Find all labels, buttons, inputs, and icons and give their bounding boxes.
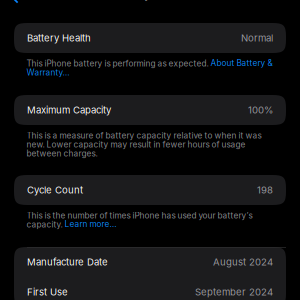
staticText: About Battery &	[210, 58, 272, 68]
button[interactable]: About Battery &	[210, 58, 272, 67]
staticText: new. Lower capacity may result in fewer …	[26, 139, 245, 149]
button[interactable]: Back	[3, 0, 27, 4]
staticText: Warranty…	[26, 67, 69, 77]
button[interactable]: Warranty…	[26, 68, 69, 77]
staticText: Normal	[241, 32, 273, 44]
button[interactable]: Maximum Capacity	[14, 95, 286, 125]
button[interactable]: Cycle Count	[14, 175, 286, 205]
staticText: Battery Health	[27, 32, 91, 44]
staticText: Maximum Capacity	[27, 104, 111, 116]
button[interactable]: First Use	[14, 277, 286, 300]
staticText: This is a measure of battery capacity re…	[26, 130, 261, 140]
staticText: September 2024	[195, 286, 273, 298]
staticText: Manufacture Date	[27, 256, 108, 268]
staticText: between charges.	[26, 148, 97, 158]
staticText: August 2024	[213, 256, 273, 268]
button[interactable]: Battery Health	[14, 23, 286, 53]
staticText: Learn more…	[64, 219, 116, 229]
staticText: This is the number of times iPhone has u…	[26, 210, 252, 220]
staticText: 198	[257, 184, 273, 196]
button[interactable]: Learn more…	[64, 219, 116, 228]
staticText: capacity.	[26, 219, 64, 229]
staticText: Cycle Count	[27, 184, 83, 196]
staticText: 100%	[248, 104, 273, 116]
button[interactable]: Manufacture Date	[14, 247, 286, 277]
staticText: This iPhone battery is performing as exp…	[26, 58, 210, 68]
staticText: Battery Health	[115, 0, 184, 1]
staticText: First Use	[27, 286, 68, 298]
